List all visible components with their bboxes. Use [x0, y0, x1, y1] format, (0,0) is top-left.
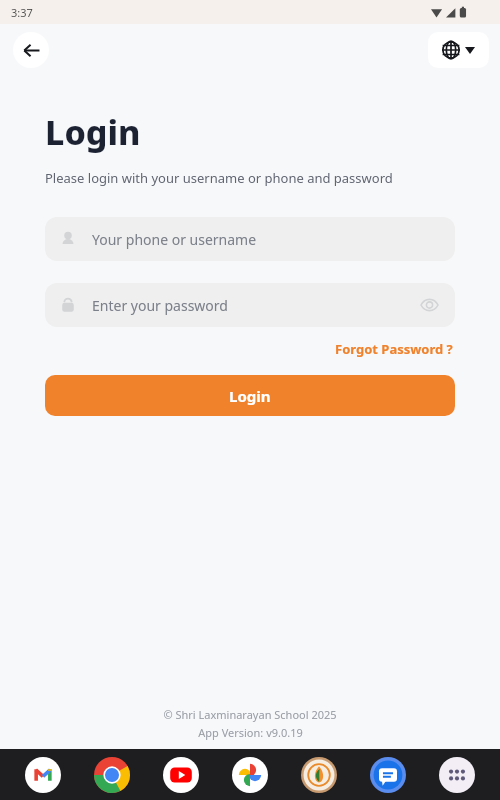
- button[interactable]: All apps: [438, 756, 476, 794]
- button[interactable]: Chrome: [93, 756, 131, 794]
- staticText: 3:37: [11, 5, 33, 20]
- staticText: Enter your password: [92, 296, 228, 315]
- staticText: Forgot Password ?: [335, 340, 453, 358]
- button[interactable]: Photos: [231, 756, 269, 794]
- button[interactable]: YouTube: [162, 756, 200, 794]
- button[interactable]: Your phone or username: [45, 217, 455, 261]
- button[interactable]: Enter your password: [45, 283, 455, 327]
- button[interactable]: Login: [45, 375, 455, 416]
- staticText: App Version: v9.0.19: [198, 725, 303, 740]
- button[interactable]: Gmail: [24, 756, 62, 794]
- button[interactable]: Show password: [412, 288, 446, 322]
- staticText: © Shri Laxminarayan School 2025: [163, 707, 337, 722]
- button[interactable]: Back: [13, 32, 49, 68]
- button[interactable]: School app: [300, 756, 338, 794]
- button[interactable]: Messages: [369, 756, 407, 794]
- staticText: Login: [229, 386, 271, 406]
- button[interactable]: Forgot Password ?: [333, 338, 455, 360]
- staticText: Your phone or username: [92, 230, 257, 249]
- button[interactable]: Change language: [428, 32, 489, 68]
- staticText: Please login with your username or phone…: [45, 169, 393, 187]
- staticText: Login: [45, 109, 141, 155]
